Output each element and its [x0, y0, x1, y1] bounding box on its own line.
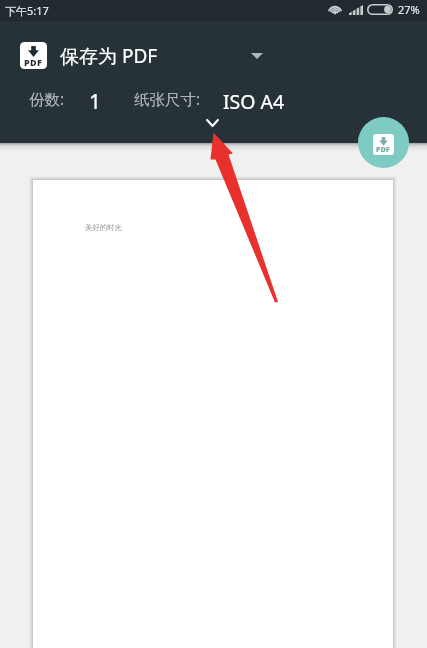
staticText: ISO A4 [223, 88, 285, 109]
staticText: 下午5:17 [5, 3, 49, 18]
staticText: 保存为 PDF [60, 43, 158, 69]
staticText: PDF [24, 56, 43, 68]
button[interactable]: 份数: [29, 88, 102, 109]
button[interactable]: Expand options [0, 111, 427, 140]
button[interactable]: Print [358, 117, 409, 168]
button[interactable]: PDF [0, 21, 427, 90]
staticText: 27% [398, 2, 420, 17]
button[interactable]: 纸张尺寸: [134, 88, 285, 109]
staticText: 美好的时光 [85, 223, 122, 232]
staticText: PDF [376, 145, 391, 154]
staticText: 份数: [29, 88, 65, 109]
staticText: 1 [89, 88, 102, 109]
staticText: 纸张尺寸: [134, 88, 201, 109]
button[interactable]: 美好的时光 [33, 180, 393, 648]
